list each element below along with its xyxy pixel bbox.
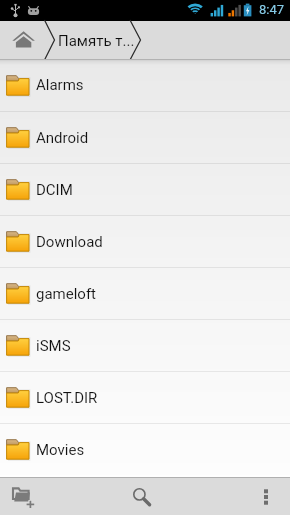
staticText: DCIM (36, 181, 73, 199)
button[interactable]: Download (0, 216, 290, 267)
button[interactable]: LOST.DIR (0, 372, 290, 423)
staticText: gameloft (36, 285, 97, 303)
staticText: Movies (36, 441, 85, 459)
button[interactable]: More options (243, 478, 288, 515)
button[interactable]: Home (0, 21, 47, 59)
staticText: LOST.DIR (36, 389, 98, 407)
button[interactable]: gameloft (0, 268, 290, 319)
button[interactable]: DCIM (0, 164, 290, 215)
staticText: Alarms (36, 76, 84, 94)
button[interactable]: Память т... (47, 21, 131, 59)
staticText: Память т... (58, 32, 135, 50)
button[interactable]: Alarms (0, 59, 290, 111)
button[interactable]: Android (0, 112, 290, 163)
button[interactable]: New folder (0, 478, 45, 515)
staticText: Download (36, 233, 103, 251)
button[interactable]: iSMS (0, 320, 290, 371)
staticText: iSMS (36, 337, 71, 355)
button[interactable]: Search (120, 478, 165, 515)
staticText: 8:47 (259, 2, 285, 17)
staticText: Android (36, 129, 89, 147)
button[interactable]: Movies (0, 424, 290, 475)
